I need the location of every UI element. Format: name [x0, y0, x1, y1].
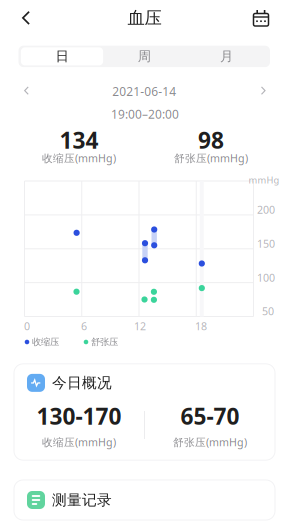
staticText: 18: [195, 319, 207, 333]
staticText: 0: [24, 319, 30, 333]
staticText: 100: [257, 270, 275, 285]
staticText: 舒张压(mmHg): [174, 151, 248, 165]
button[interactable]: 月: [185, 47, 268, 65]
button[interactable]: Previous period: [10, 76, 44, 106]
staticText: mmHg: [248, 174, 279, 186]
staticText: 周: [138, 48, 151, 65]
staticText: 12: [134, 319, 146, 333]
staticText: 2021-06-14: [112, 83, 176, 99]
staticText: 收缩压: [32, 336, 59, 348]
button[interactable]: 周: [103, 47, 185, 65]
button[interactable]: 测量记录: [14, 480, 275, 520]
staticText: 150: [257, 236, 275, 251]
button[interactable]: Calendar: [239, 0, 283, 36]
staticText: 月: [220, 48, 233, 65]
staticText: 50: [262, 304, 274, 318]
staticText: 收缩压(mmHg): [42, 151, 116, 165]
button[interactable]: Back: [4, 0, 48, 36]
button[interactable]: 日: [21, 47, 103, 65]
staticText: 测量记录: [52, 491, 112, 509]
staticText: 日: [55, 48, 68, 65]
staticText: 舒张压: [91, 336, 118, 348]
staticText: 收缩压(mmHg): [42, 435, 116, 449]
staticText: 134: [59, 125, 98, 155]
staticText: 血压: [127, 7, 161, 29]
staticText: 130-170: [36, 401, 121, 431]
staticText: 200: [257, 202, 275, 217]
staticText: 19:00–20:00: [111, 106, 179, 122]
staticText: 今日概况: [52, 374, 112, 392]
staticText: 舒张压(mmHg): [173, 435, 247, 449]
staticText: 98: [198, 125, 224, 155]
button[interactable]: Next period: [246, 76, 280, 106]
staticText: 65-70: [180, 401, 239, 431]
staticText: 6: [81, 319, 87, 333]
